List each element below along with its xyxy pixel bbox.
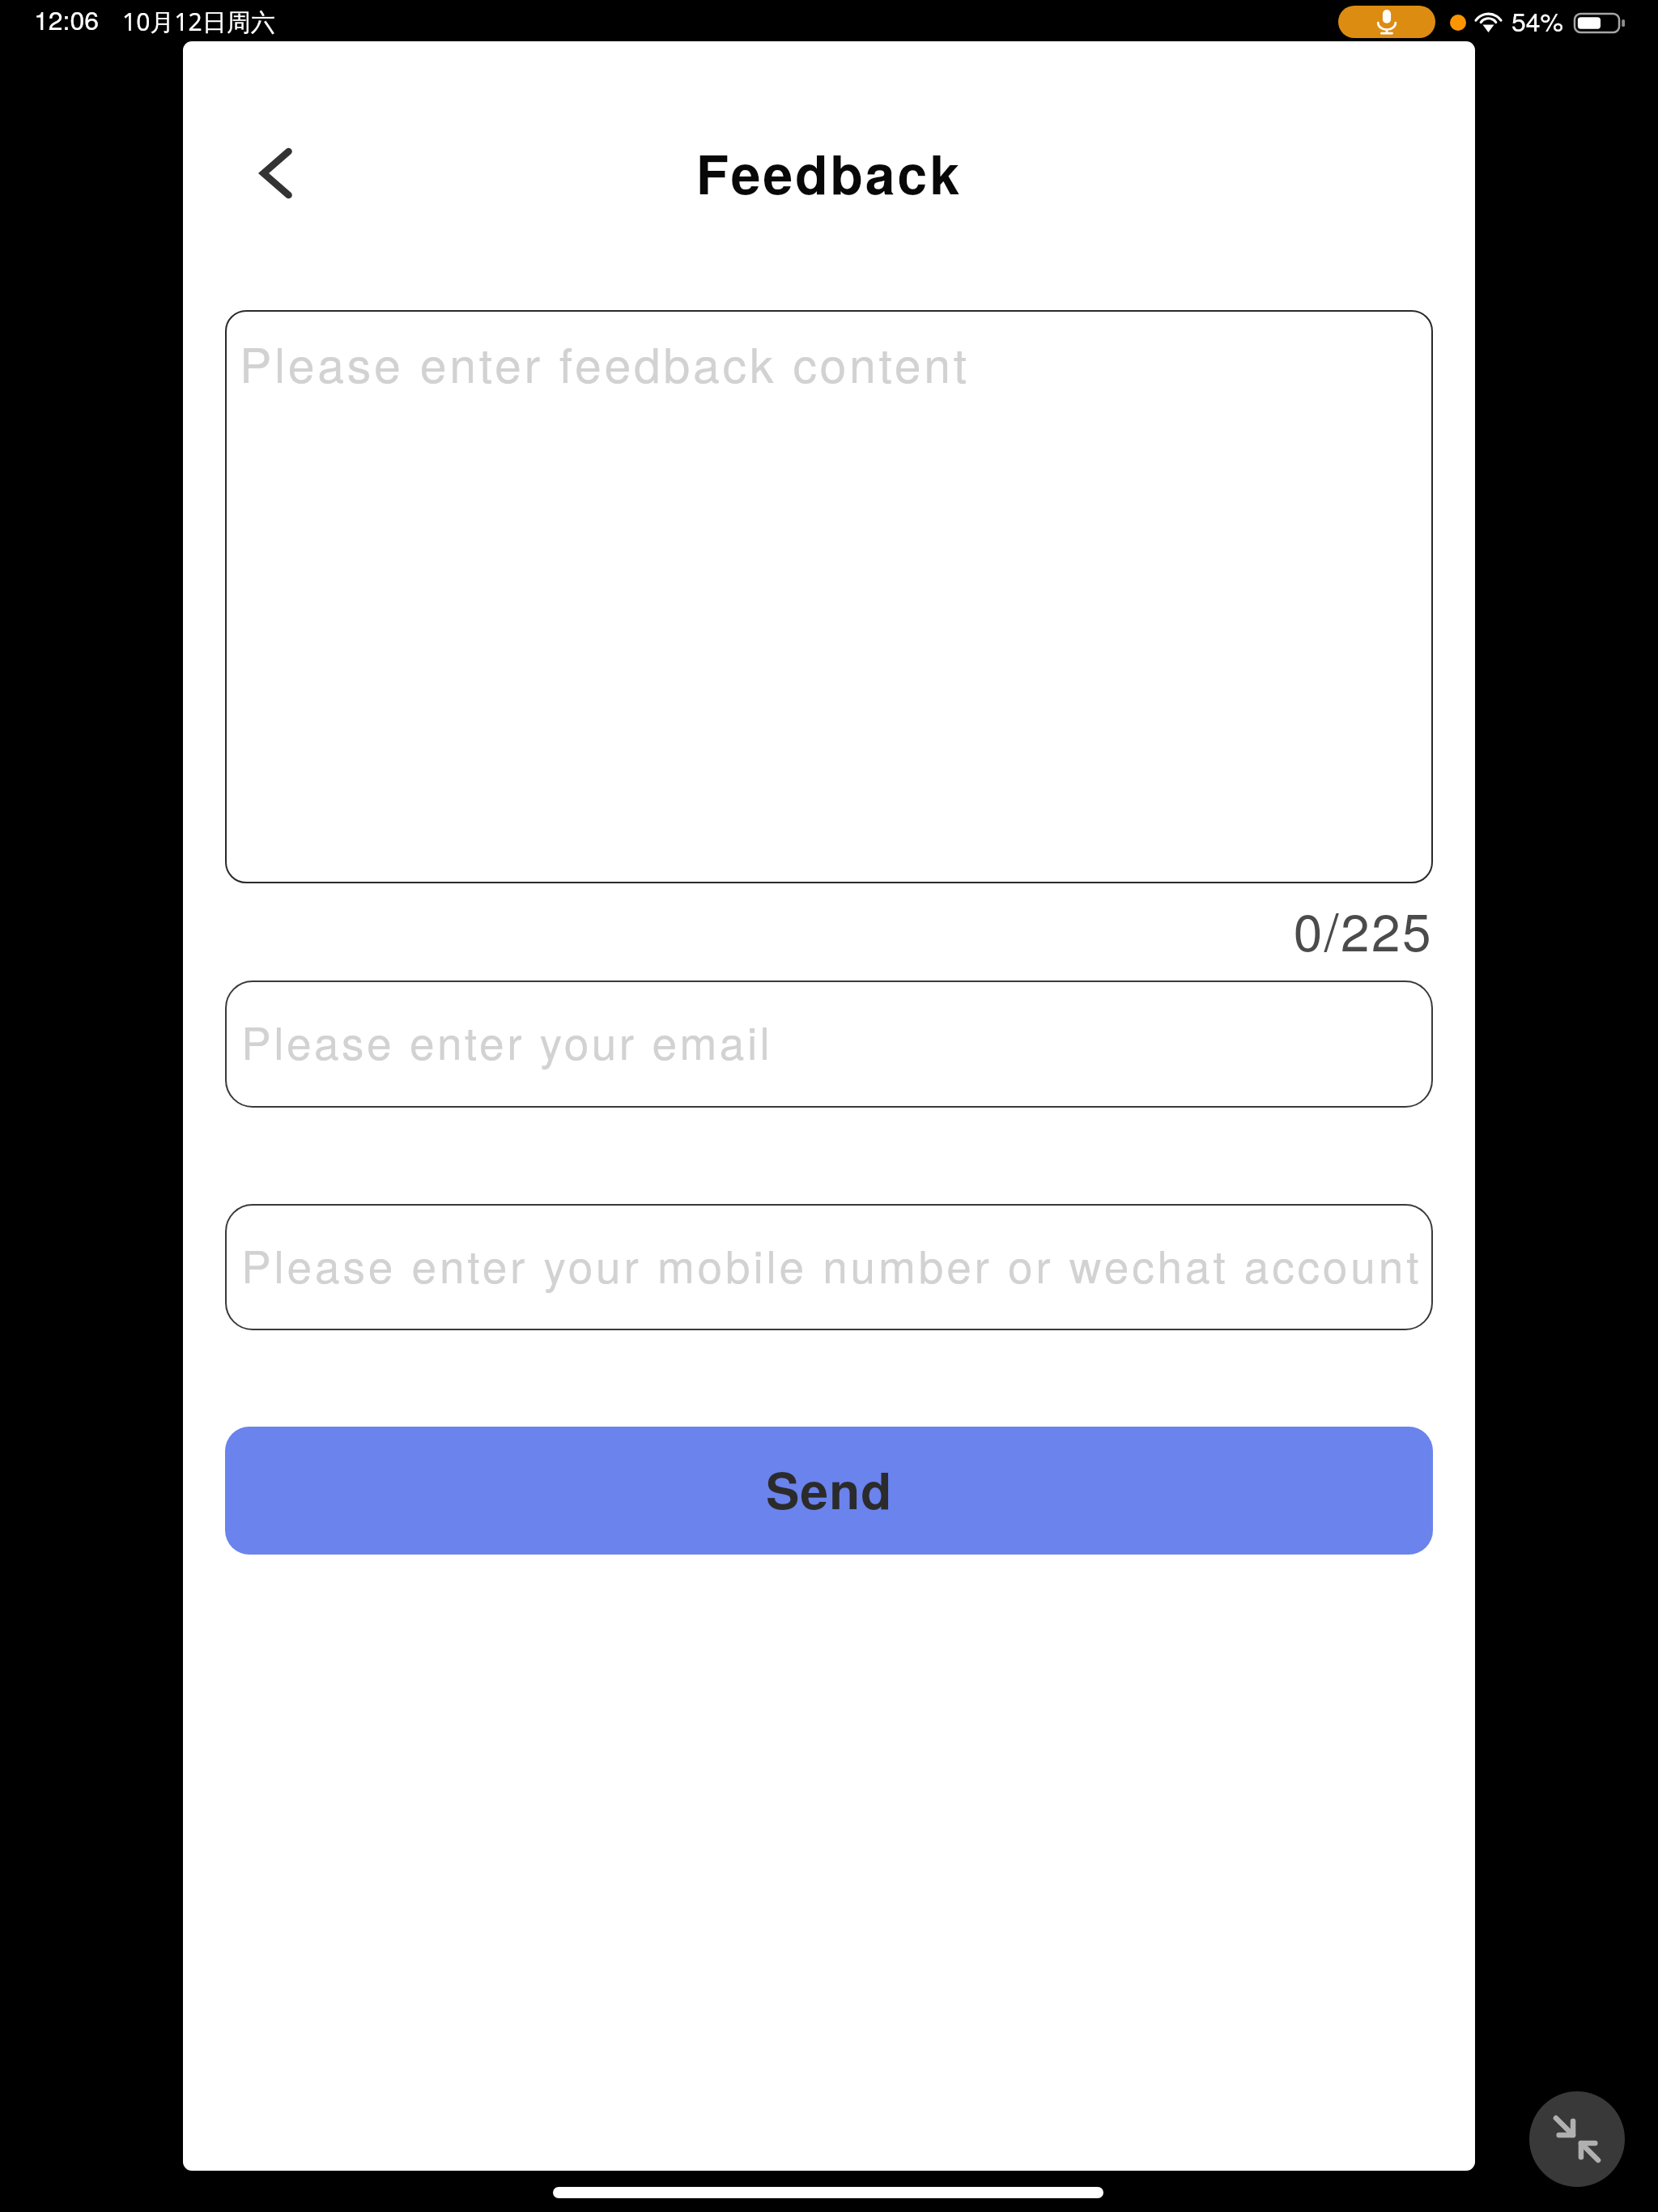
staticText: Please enter your mobile number or wecha… — [241, 1232, 1422, 1296]
button[interactable]: Please enter your email — [225, 981, 1433, 1108]
other: Microphone in use — [1338, 6, 1435, 38]
button[interactable]: Back — [227, 125, 325, 222]
button[interactable]: Send — [225, 1427, 1433, 1555]
staticText: Send — [766, 1453, 893, 1525]
staticText: Please enter your email — [241, 1009, 773, 1073]
button[interactable]: Please enter your mobile number or wecha… — [225, 1204, 1433, 1330]
button[interactable]: Collapse window — [1529, 2091, 1625, 2187]
staticText: 0/225 — [183, 892, 1433, 967]
button[interactable]: Please enter feedback content — [225, 310, 1433, 883]
staticText: 54% — [1511, 2, 1564, 39]
staticText: 12:06 — [34, 0, 100, 37]
staticText: Feedback — [183, 134, 1475, 211]
staticText: Please enter feedback content — [240, 328, 970, 396]
staticText: 10月12日周六 — [122, 5, 275, 38]
